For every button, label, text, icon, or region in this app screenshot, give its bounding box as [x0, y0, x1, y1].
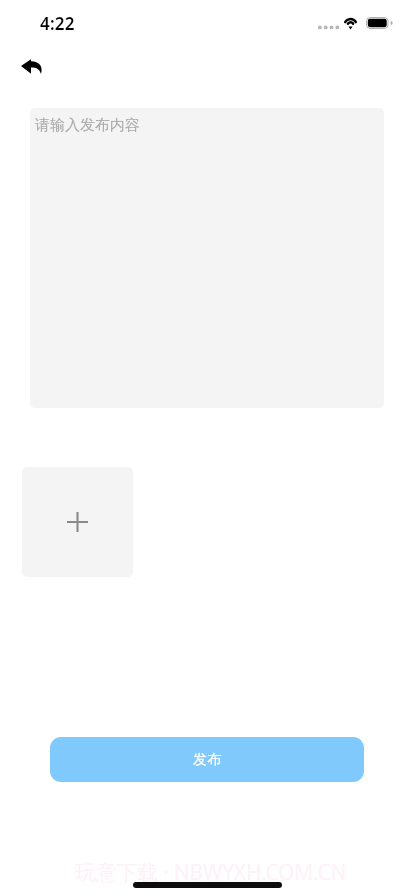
staticText: 4:22: [40, 12, 75, 35]
button[interactable]: Add image: [22, 467, 133, 577]
staticText: 玩意下载 · NBWYXH.COM.CN: [75, 858, 347, 887]
staticText: 请输入发布内容: [35, 116, 140, 135]
button[interactable]: Back: [0, 44, 62, 88]
button[interactable]: 发布: [50, 737, 364, 782]
button[interactable]: 请输入发布内容: [30, 108, 384, 408]
staticText: 发布: [193, 751, 221, 769]
